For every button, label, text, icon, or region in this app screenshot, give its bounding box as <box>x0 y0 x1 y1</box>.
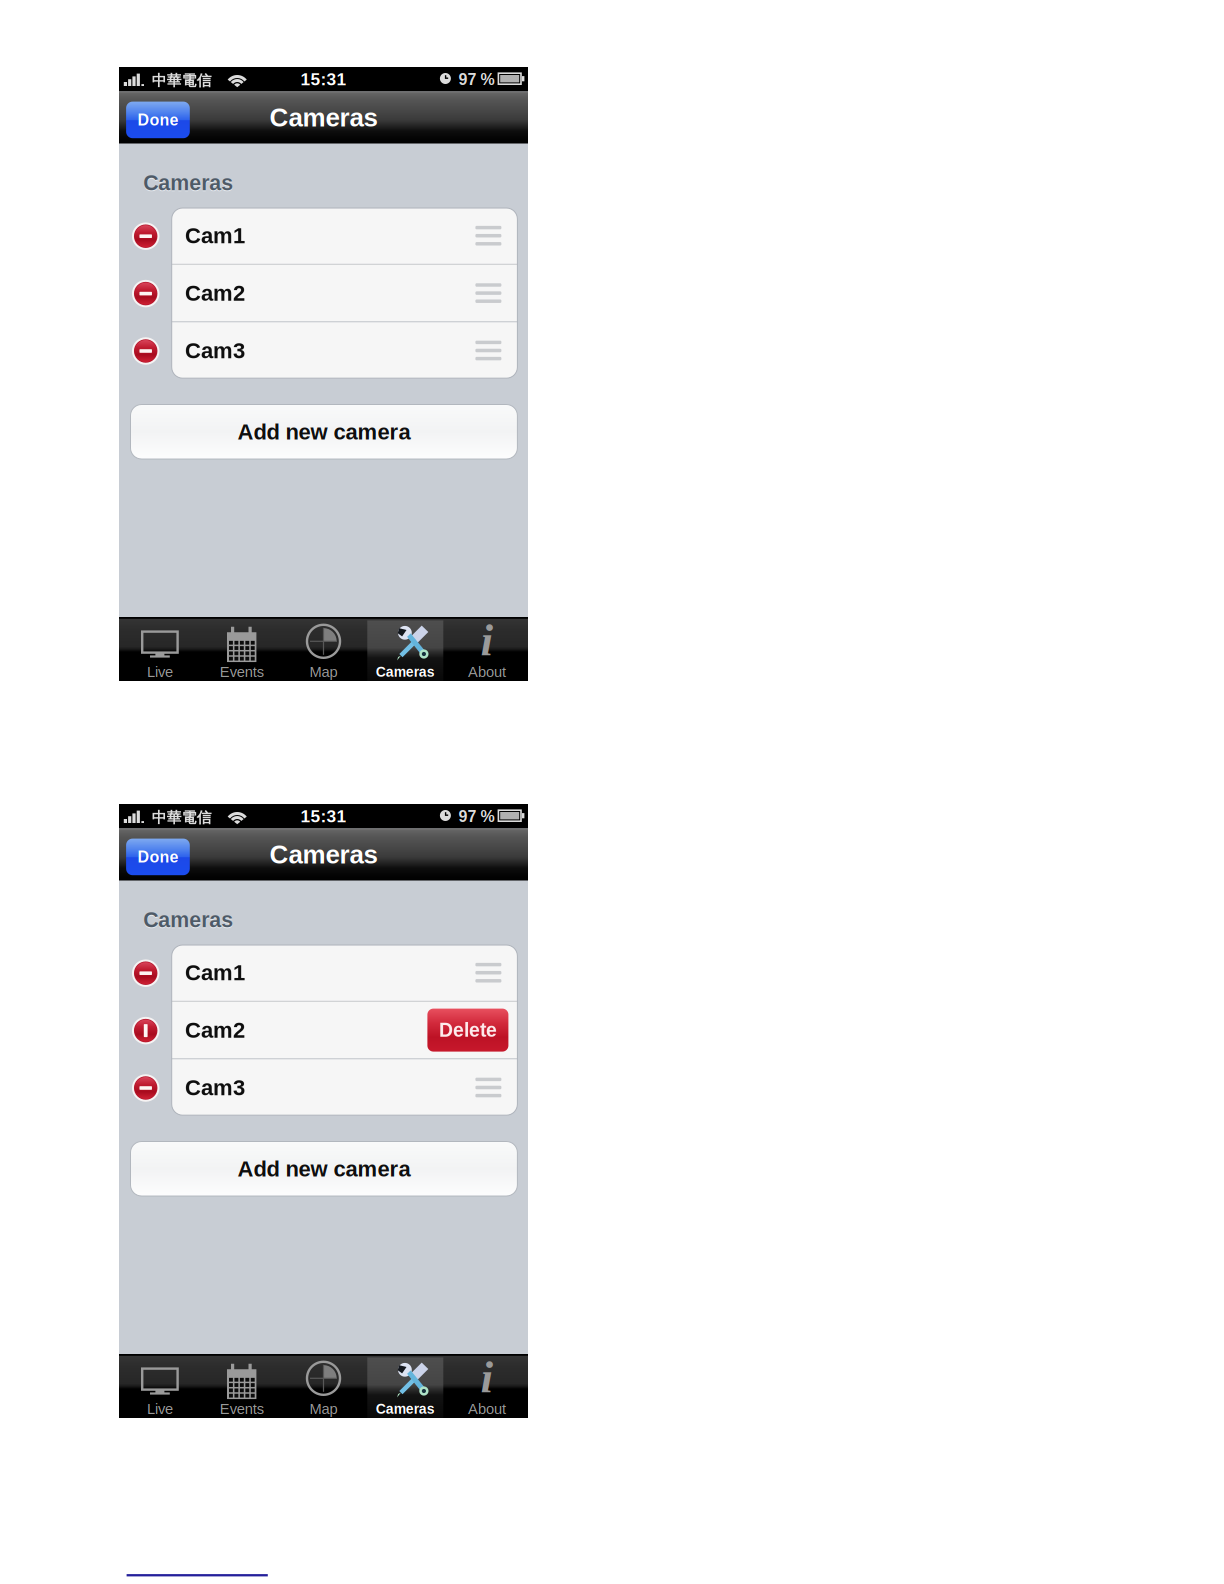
button[interactable]: Remove <box>132 280 160 308</box>
staticText: Cameras <box>376 1401 435 1417</box>
staticText: Add new camera <box>237 419 410 444</box>
staticText: i <box>481 615 494 665</box>
button[interactable]: Delete <box>427 1009 508 1052</box>
staticText: About <box>468 664 506 680</box>
staticText: About <box>468 1401 506 1417</box>
button[interactable]: i <box>446 1354 528 1418</box>
staticText: 中華電信 <box>152 808 212 827</box>
button[interactable]: Cam3 <box>172 322 517 379</box>
button[interactable]: Events <box>201 1354 283 1418</box>
staticText: Events <box>220 1401 264 1417</box>
button[interactable]: Map <box>283 617 364 681</box>
staticText: Cam1 <box>185 960 245 985</box>
button[interactable]: Cameras <box>364 1354 446 1418</box>
staticText: Done <box>137 111 178 129</box>
staticText: Events <box>220 664 264 680</box>
button[interactable]: Add new camera <box>130 404 517 459</box>
button[interactable]: Remove <box>132 337 160 365</box>
button[interactable]: Remove <box>132 1074 160 1102</box>
staticText: Cam3 <box>185 338 245 363</box>
staticText: Cameras <box>376 664 435 680</box>
button[interactable]: Events <box>201 617 283 681</box>
button[interactable]: Cam1 <box>172 207 517 264</box>
button[interactable]: Cameras <box>364 617 446 681</box>
staticText: Cameras <box>143 171 233 195</box>
button[interactable]: Remove <box>132 1017 160 1045</box>
button[interactable]: Add new camera <box>130 1141 517 1196</box>
staticText: 15:31 <box>300 70 346 89</box>
button[interactable]: Cam1 <box>172 944 517 1001</box>
staticText: 97 % <box>458 71 494 88</box>
staticText: 15:31 <box>300 807 346 826</box>
button[interactable]: Cam2 <box>172 265 517 321</box>
staticText: Cam2 <box>185 1018 245 1042</box>
button[interactable]: Cam3 <box>172 1059 517 1116</box>
button[interactable]: Live <box>119 617 201 681</box>
staticText: Cam3 <box>185 1075 245 1100</box>
staticText: Cam1 <box>185 223 245 248</box>
staticText: Live <box>147 1401 173 1417</box>
staticText: Add new camera <box>237 1156 410 1181</box>
button[interactable]: Done <box>126 102 190 138</box>
staticText: 97 % <box>458 808 494 825</box>
staticText: Map <box>309 664 337 680</box>
staticText: i <box>481 1352 494 1402</box>
staticText: Cameras <box>269 103 377 132</box>
staticText: Live <box>147 664 173 680</box>
staticText: Cameras <box>143 908 233 932</box>
staticText: 中華電信 <box>152 71 212 90</box>
staticText: Cam2 <box>185 281 245 305</box>
button[interactable]: Cam2 <box>172 1002 517 1058</box>
staticText: Done <box>137 848 178 866</box>
staticText: Cameras <box>143 172 233 196</box>
button[interactable]: Remove <box>132 222 160 250</box>
staticText: Delete <box>439 1019 497 1041</box>
button[interactable]: i <box>446 617 528 681</box>
button[interactable]: Live <box>119 1354 201 1418</box>
staticText: Map <box>309 1401 337 1417</box>
button[interactable]: Map <box>283 1354 364 1418</box>
button[interactable]: Done <box>126 839 190 875</box>
staticText: Cameras <box>269 840 377 869</box>
button[interactable]: Remove <box>132 959 160 987</box>
staticText: Cameras <box>143 909 233 933</box>
